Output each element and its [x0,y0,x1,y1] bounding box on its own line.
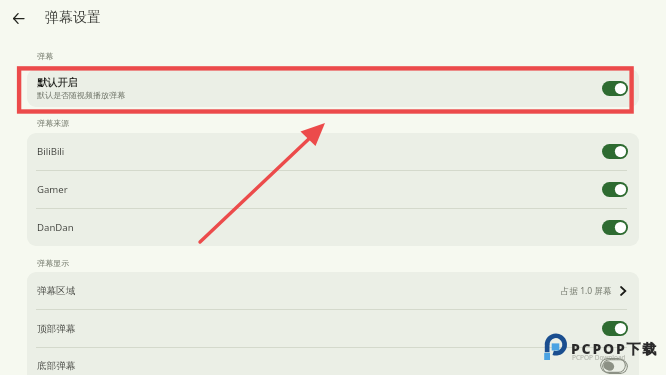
staticText: 占据 1.0 屏幕 [561,285,612,297]
staticText: Gamer [37,183,68,196]
button[interactable]: 底部弹幕 [27,348,639,375]
staticText: 弹幕显示 [37,258,69,268]
button[interactable]: Back [6,6,30,30]
staticText: BiliBili [37,145,65,158]
button[interactable]: 顶部弹幕 [27,310,639,347]
staticText: 底部弹幕 [37,360,76,372]
staticText: DanDan [37,221,74,234]
staticText: 弹幕区域 [37,285,76,297]
button[interactable]: Toggle on [602,220,628,235]
button[interactable]: Toggle on [602,144,628,159]
button[interactable]: Gamer [27,171,639,208]
button[interactable]: Toggle off [600,358,626,373]
button[interactable]: Toggle on [602,182,628,197]
staticText: 弹幕设置 [45,9,101,27]
other: Open 弹幕区域 [618,286,628,296]
staticText: 默认是否随视频播放弹幕 [37,90,125,100]
staticText: PCPOP Download [572,353,626,362]
button[interactable]: DanDan [27,209,639,246]
button[interactable]: 弹幕区域 [27,272,639,309]
staticText: 弹幕来源 [37,118,69,128]
staticText: 顶部弹幕 [37,323,76,335]
button[interactable]: 默认开启 [27,69,639,107]
button[interactable]: Toggle off [602,359,628,374]
button[interactable]: BiliBili [27,133,639,170]
button[interactable]: Toggle on [602,81,628,96]
button[interactable]: Toggle on [602,321,628,336]
staticText: 弹幕 [37,51,53,61]
staticText: PCPOP下载 [571,339,659,358]
staticText: 默认开启 [37,76,78,89]
